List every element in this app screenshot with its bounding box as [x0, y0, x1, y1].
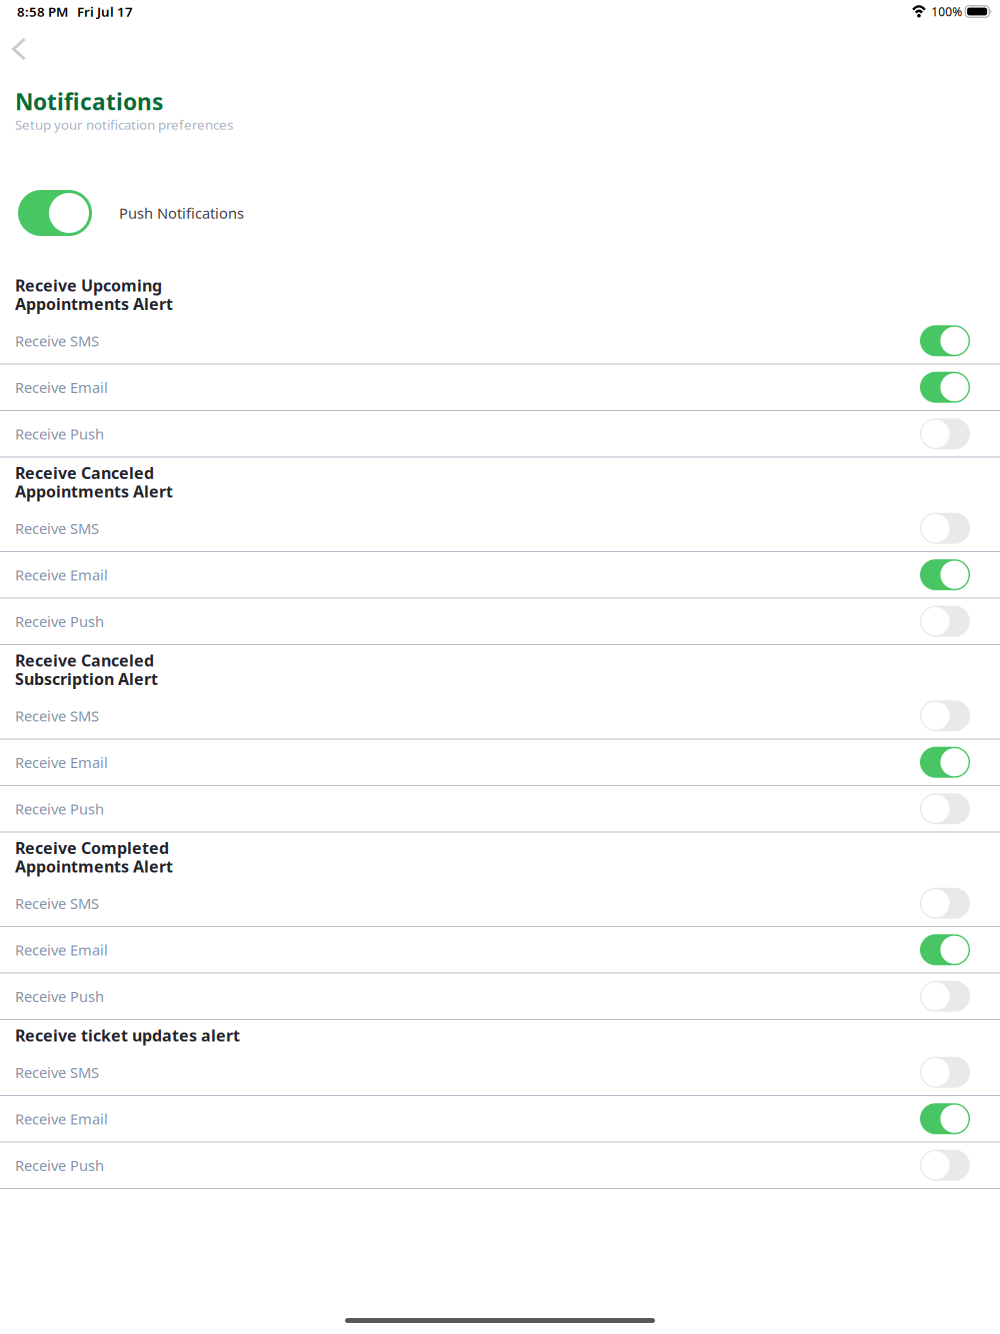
staticText: Receive Canceled	[15, 650, 154, 671]
button[interactable]: Receive SMS	[0, 318, 1000, 364]
button[interactable]: Receive Email	[0, 552, 1000, 598]
staticText: Appointments Alert	[15, 856, 173, 877]
staticText: Receive Push	[15, 986, 104, 1006]
button[interactable]: Receive Push	[0, 411, 1000, 457]
button[interactable]: Receive Push	[0, 973, 1000, 1020]
button[interactable]: Receive Push	[0, 1142, 1000, 1189]
staticText: Receive Email	[15, 752, 108, 772]
staticText: Push Notifications	[119, 203, 244, 223]
staticText: Receive Email	[15, 377, 108, 397]
button[interactable]: Receive SMS	[0, 880, 1000, 927]
staticText: Receive Email	[15, 940, 108, 959]
button[interactable]: Back	[0, 22, 42, 91]
staticText: Fri Jul 17	[77, 3, 133, 20]
staticText: 100%	[931, 3, 962, 19]
staticText: Appointments Alert	[15, 293, 173, 314]
button[interactable]: Receive Email	[0, 739, 1000, 786]
button[interactable]: Receive Email	[0, 364, 1000, 411]
staticText: Receive Completed	[15, 837, 169, 858]
staticText: Receive SMS	[15, 518, 99, 538]
staticText: Setup your notification preferences	[15, 116, 233, 133]
staticText: Subscription Alert	[15, 668, 158, 689]
button[interactable]: Receive Push	[0, 786, 1000, 832]
button[interactable]: Push Notifications	[18, 190, 92, 236]
staticText: Receive SMS	[15, 706, 99, 725]
staticText: Receive ticket updates alert	[15, 1025, 240, 1046]
staticText: Receive Canceled	[15, 462, 154, 483]
staticText: Receive SMS	[15, 893, 99, 913]
staticText: 8:58 PM	[17, 3, 68, 20]
staticText: Receive Push	[15, 1155, 104, 1175]
staticText: Receive Upcoming	[15, 275, 162, 296]
button[interactable]: Receive SMS	[0, 1049, 1000, 1096]
staticText: Receive SMS	[15, 1062, 99, 1082]
staticText: Receive Email	[15, 1109, 108, 1128]
staticText: Receive Push	[15, 611, 104, 631]
staticText: Receive SMS	[15, 331, 99, 350]
staticText: Receive Push	[15, 424, 104, 443]
button[interactable]: Receive Email	[0, 1096, 1000, 1142]
button[interactable]: Receive SMS	[0, 505, 1000, 552]
button[interactable]: Receive Email	[0, 927, 1000, 973]
staticText: Appointments Alert	[15, 481, 173, 502]
staticText: Receive Push	[15, 799, 104, 818]
staticText: Notifications	[15, 86, 163, 116]
button[interactable]: Receive Push	[0, 598, 1000, 645]
staticText: Receive Email	[15, 565, 108, 584]
button[interactable]: Receive SMS	[0, 693, 1000, 739]
